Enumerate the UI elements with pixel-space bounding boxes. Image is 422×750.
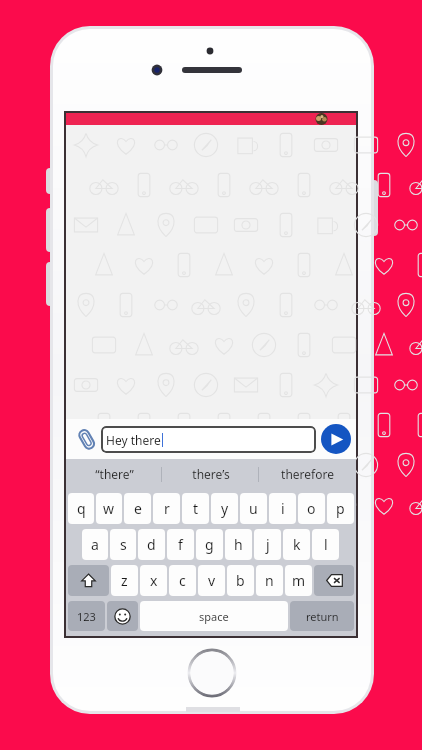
button[interactable]: Emoji keyboard [107,601,138,631]
button[interactable]: u [240,493,267,524]
button[interactable]: v [198,565,225,596]
staticText: Hey there [106,432,161,448]
button[interactable]: l [312,529,339,560]
staticText: return [306,609,339,624]
staticText: o [307,499,316,518]
staticText: l [324,535,328,554]
staticText: e [134,499,142,518]
button[interactable]: space [140,601,288,631]
button[interactable]: d [138,529,165,560]
staticText: k [293,535,301,554]
staticText: therefore [281,466,334,482]
staticText: u [249,499,258,518]
button[interactable]: m [285,565,312,596]
button[interactable]: j [254,529,281,560]
staticText: r [164,499,170,518]
button[interactable]: a [82,529,108,560]
staticText: j [266,535,270,554]
button[interactable]: there’s [162,459,259,489]
button[interactable]: “there” [66,459,162,489]
staticText: d [147,535,156,554]
staticText: y [221,499,229,518]
button[interactable]: t [182,493,209,524]
staticText: b [236,571,245,590]
staticText: g [205,535,214,554]
button[interactable]: w [96,493,122,524]
staticText: q [77,499,86,518]
button[interactable]: f [167,529,194,560]
button[interactable]: i [269,493,296,524]
button[interactable]: s [110,529,136,560]
button[interactable]: n [256,565,283,596]
button[interactable]: r [153,493,180,524]
button[interactable]: o [298,493,325,524]
staticText: s [120,535,127,554]
button[interactable]: p [327,493,354,524]
button[interactable]: z [111,565,138,596]
button[interactable]: return [290,601,354,631]
button[interactable]: h [225,529,252,560]
button[interactable]: Profile photo [311,113,332,125]
button[interactable]: c [169,565,196,596]
staticText: m [292,571,306,590]
button[interactable]: k [283,529,310,560]
staticText: i [281,499,285,518]
staticText: h [234,535,243,554]
staticText: x [150,571,158,590]
button[interactable]: g [196,529,223,560]
staticText: v [208,571,216,590]
staticText: p [336,499,345,518]
button[interactable]: b [227,565,254,596]
button[interactable]: Send message [321,424,351,454]
staticText: space [199,609,229,624]
button[interactable]: e [124,493,151,524]
button[interactable]: x [140,565,167,596]
staticText: f [178,535,183,554]
staticText: c [179,571,186,590]
button[interactable]: 123 [68,601,105,631]
button[interactable]: Hey there [101,426,316,453]
button[interactable]: Attach file [71,424,101,454]
staticText: w [103,499,115,518]
staticText: z [121,571,128,590]
staticText: “there” [95,466,134,482]
button[interactable]: Shift [68,565,109,596]
staticText: n [265,571,274,590]
button[interactable]: q [68,493,94,524]
staticText: 123 [77,609,96,624]
button[interactable]: Backspace [314,565,354,596]
button[interactable]: therefore [259,459,356,489]
staticText: a [91,535,99,554]
button[interactable]: y [211,493,238,524]
staticText: there’s [192,466,230,482]
staticText: t [193,499,199,518]
